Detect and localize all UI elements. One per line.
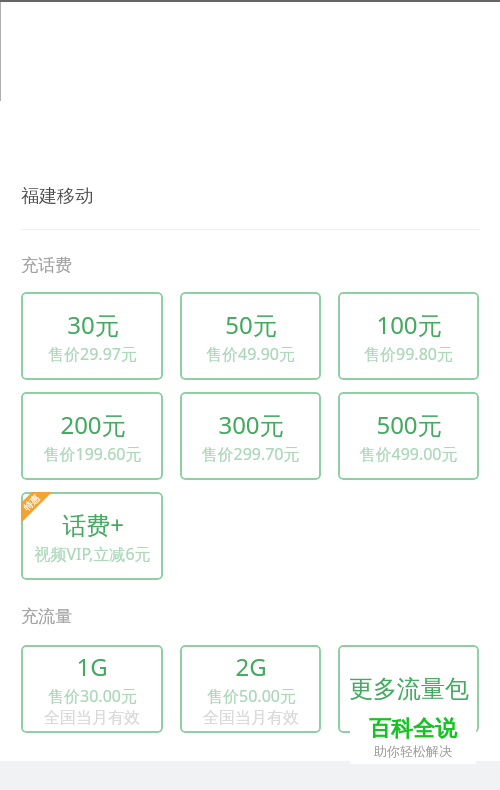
staticText: 1G (76, 650, 108, 683)
staticText: 售价199.60元 (43, 443, 142, 465)
staticText: 售价99.80元 (364, 343, 453, 365)
staticText: 2G (235, 650, 267, 683)
staticText: 500元 (376, 408, 442, 441)
button[interactable]: 30元 (21, 292, 163, 380)
staticText: 百科全说 (369, 715, 457, 743)
staticText: 充话费 (21, 255, 72, 276)
staticText: 特惠 (21, 492, 42, 513)
button[interactable]: 200元 (21, 392, 163, 480)
staticText: 全国当月有效 (44, 708, 140, 728)
staticText: 助你轻松解决 (374, 743, 452, 759)
staticText: 更多流量包 (349, 674, 469, 704)
button[interactable]: 500元 (338, 392, 479, 480)
staticText: 充流量 (21, 606, 72, 627)
staticText: 售价499.00元 (359, 443, 458, 465)
button[interactable]: 300元 (180, 392, 321, 480)
button[interactable]: 2G (180, 645, 321, 733)
button[interactable]: 100元 (338, 292, 479, 380)
staticText: 售价29.97元 (48, 343, 137, 365)
staticText: 售价30.00元 (48, 685, 137, 707)
staticText: 全国当月有效 (203, 708, 299, 728)
staticText: 话费+ (62, 508, 124, 541)
staticText: 售价299.70元 (201, 443, 300, 465)
button[interactable]: 1G (21, 645, 163, 733)
staticText: 视频VIP,立减6元 (34, 543, 151, 565)
staticText: 50元 (225, 308, 277, 341)
staticText: 福建移动 (21, 185, 93, 208)
staticText: 售价50.00元 (207, 685, 296, 707)
button[interactable]: 50元 (180, 292, 321, 380)
staticText: 30元 (67, 308, 119, 341)
button[interactable]: 话费+ (21, 492, 163, 580)
staticText: 300元 (218, 408, 284, 441)
button[interactable]: 更多流量包 (338, 645, 479, 733)
staticText: 200元 (60, 408, 126, 441)
staticText: 100元 (376, 308, 442, 341)
staticText: 售价49.90元 (206, 343, 295, 365)
